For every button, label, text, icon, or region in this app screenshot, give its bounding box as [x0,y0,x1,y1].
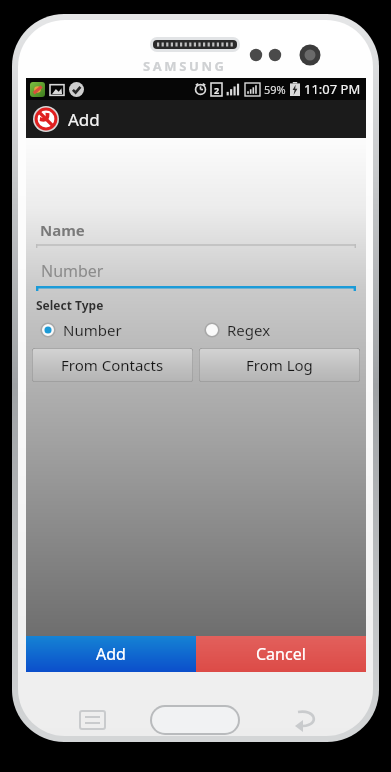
staticText: 2 [214,84,220,96]
staticText: Add [68,108,100,131]
button[interactable]: From Log [199,348,360,382]
staticText: From Contacts [61,355,164,375]
staticText: SAMSUNG [143,57,227,75]
button[interactable]: From Contacts [32,348,193,382]
button[interactable]: Name [36,220,356,248]
staticText: 59% [264,82,286,97]
button[interactable]: Regex [196,317,360,343]
button[interactable]: Number [36,260,356,291]
button[interactable]: Number [32,317,196,343]
staticText: Regex [227,320,271,340]
staticText: Add [96,643,126,665]
staticText: From Log [246,355,313,375]
button[interactable]: Add [26,636,196,672]
staticText: Number [41,260,104,282]
button[interactable]: Cancel [196,636,366,672]
other: App icon [33,106,59,132]
staticText: 11:07 PM [304,80,361,98]
staticText: Name [40,220,85,240]
staticText: Cancel [256,643,306,665]
staticText: Number [63,320,122,340]
staticText: Select Type [36,297,104,313]
